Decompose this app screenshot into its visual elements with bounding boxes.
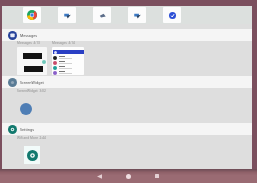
staticText: ScreenWidget 3:02 [17, 89, 46, 93]
button[interactable]: Recent apps [147, 169, 166, 183]
button[interactable]: App 2 [58, 7, 76, 23]
staticText: ScreenWidget [20, 80, 44, 85]
button[interactable]: App 5 [163, 7, 181, 23]
button[interactable]: Settings [2, 123, 252, 135]
button[interactable] [17, 47, 47, 75]
button[interactable]: ScreenWidget [2, 76, 252, 88]
button[interactable]: App 3 [93, 7, 111, 23]
button[interactable]: Settings preview [24, 146, 40, 164]
staticText: Messages 4:14 [52, 41, 75, 45]
button[interactable]: ScreenWidget preview [20, 103, 32, 115]
button[interactable]: Home [119, 169, 138, 183]
button[interactable] [52, 47, 84, 75]
staticText: Wifi and More 2:44 [17, 136, 46, 140]
button[interactable]: Back [90, 169, 109, 183]
button[interactable]: App 4 [128, 7, 146, 23]
staticText: Messages [20, 33, 37, 38]
button[interactable]: App 1 [23, 7, 41, 23]
staticText: Messages 4:13 [17, 41, 40, 45]
staticText: Settings [20, 127, 34, 132]
button[interactable]: Messages [2, 29, 252, 41]
